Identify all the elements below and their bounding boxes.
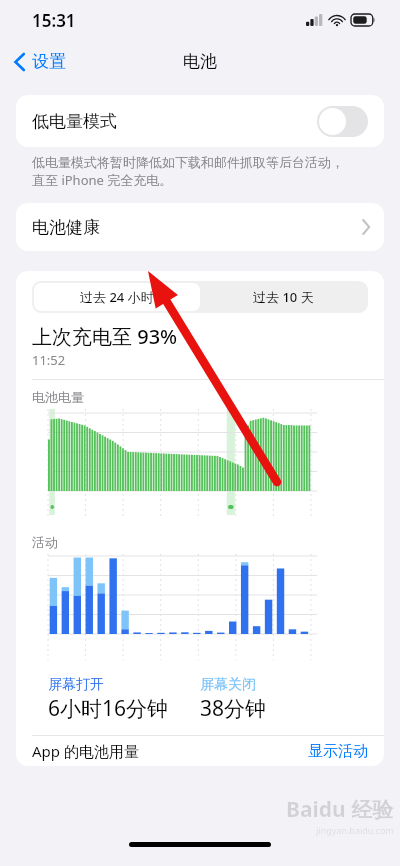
button[interactable]: 过去 10 天 <box>200 283 366 311</box>
staticText: 11:52 <box>32 351 66 369</box>
button[interactable]: 低电量模式 <box>16 95 384 147</box>
button[interactable]: 电池健康 <box>16 203 384 251</box>
staticText: 过去 24 小时 <box>80 288 154 306</box>
staticText: 低电量模式 <box>32 111 117 132</box>
staticText: jingyan.baidu.com <box>316 824 394 836</box>
button[interactable]: 过去 24 小时 <box>34 283 200 311</box>
staticText: 15:31 <box>32 9 76 32</box>
staticText: 电池电量 <box>32 389 84 405</box>
staticText: 屏幕打开 <box>48 676 104 694</box>
button[interactable]: 显示活动 <box>308 742 368 761</box>
staticText: 活动 <box>32 534 58 550</box>
staticText: 6小时16分钟 <box>48 694 169 723</box>
staticText: 屏幕关闭 <box>200 676 256 694</box>
staticText: Baidu 经验 <box>286 795 394 824</box>
staticText: App 的电池用量 <box>32 741 139 761</box>
staticText: 38分钟 <box>200 694 267 723</box>
staticText: 电池 <box>183 51 217 72</box>
staticText: 设置 <box>32 51 66 72</box>
button[interactable]: Low Power Mode toggle <box>317 106 368 137</box>
staticText: 上次充电至 93% <box>32 323 178 350</box>
staticText: 低电量模式将暂时降低如下载和邮件抓取等后台活动， 直至 iPhone 完全充电。 <box>32 154 344 189</box>
staticText: 过去 10 天 <box>253 288 314 306</box>
staticText: 电池健康 <box>32 217 100 238</box>
button[interactable]: 设置 <box>10 47 70 76</box>
